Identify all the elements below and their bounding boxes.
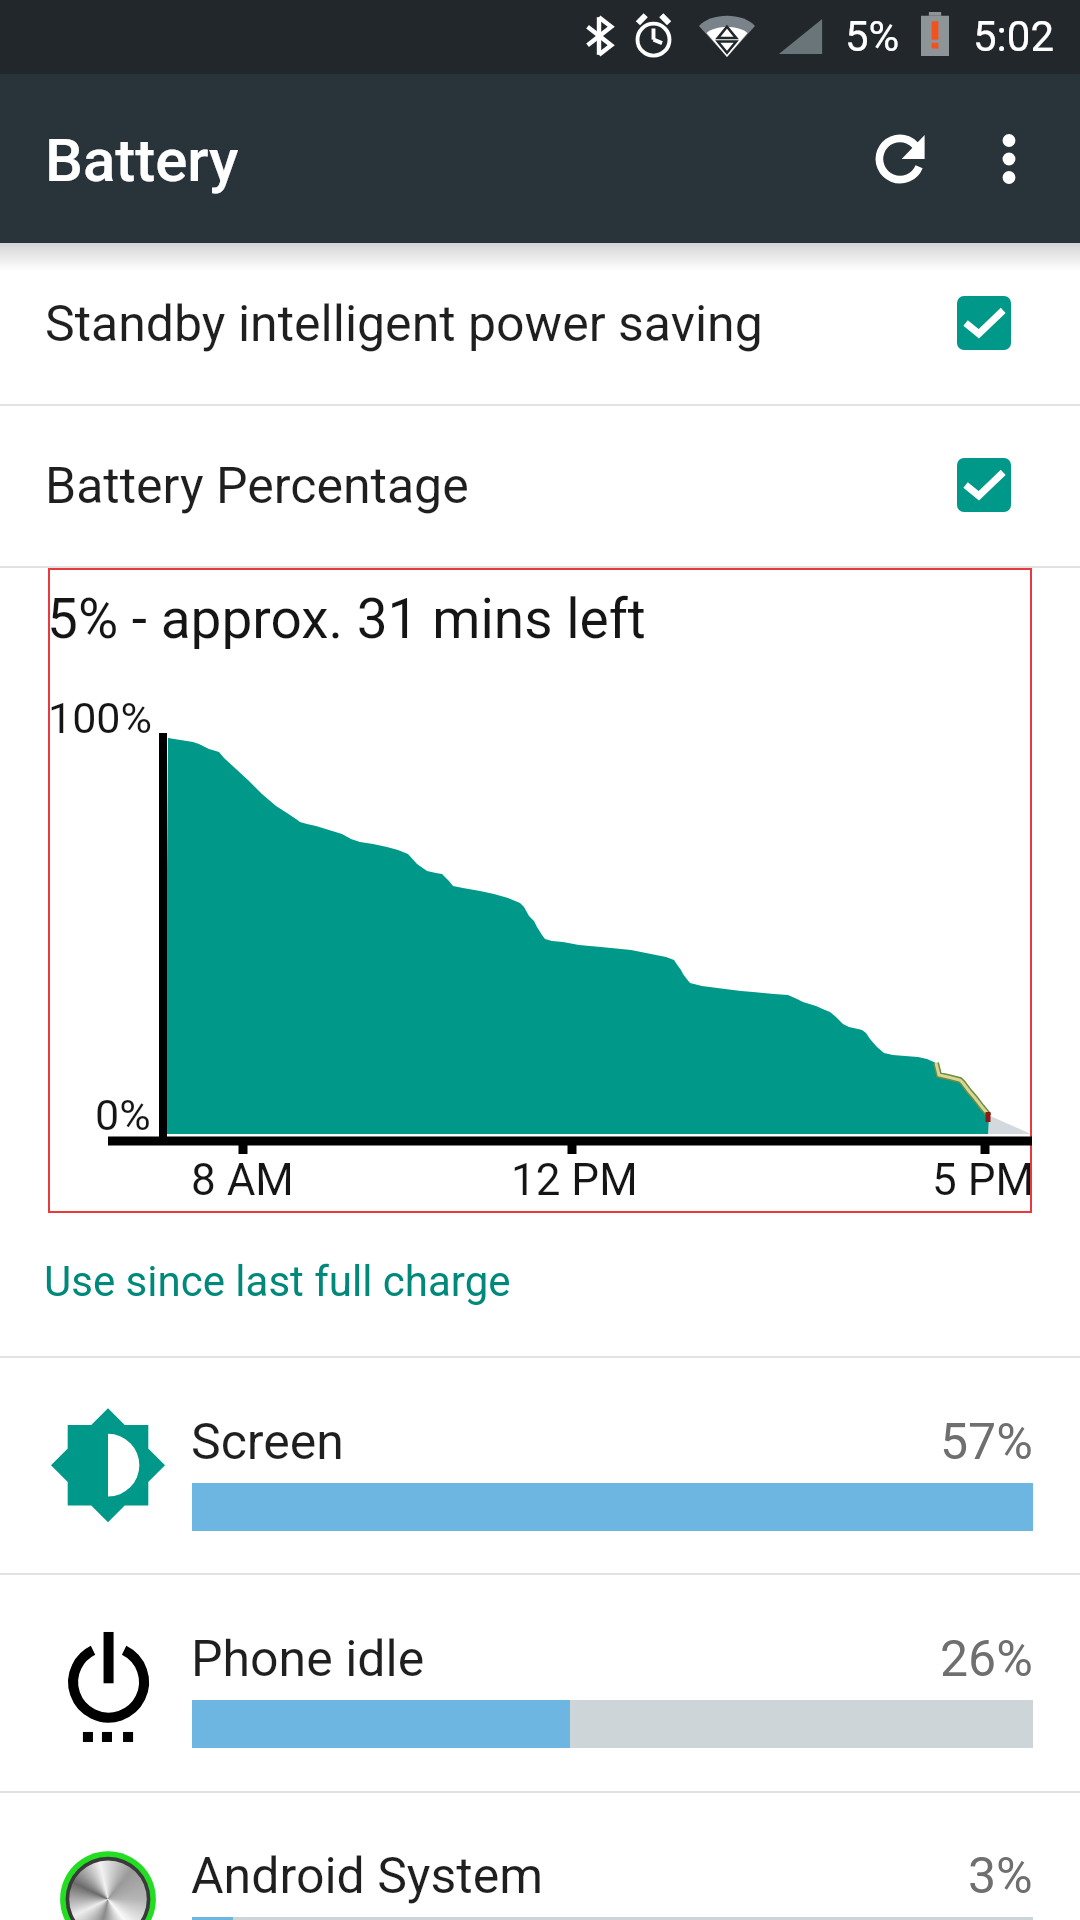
staticText: 8 AM [191, 1154, 294, 1206]
staticText: Battery [45, 125, 239, 195]
staticText: 5% [845, 12, 900, 61]
staticText: 26% [940, 1630, 1033, 1689]
staticText: Battery Percentage [45, 457, 469, 516]
staticText: 3% [968, 1847, 1033, 1906]
button[interactable]: More options [938, 74, 1080, 243]
staticText: 57% [940, 1413, 1033, 1472]
staticText: 5% - approx. 31 mins left [47, 587, 646, 651]
button[interactable]: Battery history graph [48, 568, 1032, 1213]
button[interactable]: Standby intelligent power saving [0, 243, 1080, 405]
button[interactable]: Screen [0, 1358, 1080, 1575]
staticText: 5 PM [932, 1154, 1034, 1206]
button[interactable]: Refresh [816, 75, 984, 243]
staticText: 12 PM [511, 1154, 638, 1206]
staticText: Use since last full charge [44, 1257, 511, 1306]
staticText: Android System [191, 1847, 544, 1906]
staticText: Screen [191, 1413, 344, 1472]
staticText: Standby intelligent power saving [45, 295, 763, 354]
button[interactable]: Use since last full charge [0, 1213, 1080, 1357]
staticText: 100% [48, 693, 152, 743]
button[interactable]: Battery Percentage [0, 405, 1080, 567]
button[interactable]: Android System [0, 1792, 1080, 1920]
staticText: Phone idle [191, 1630, 425, 1689]
staticText: 5:02 [973, 12, 1054, 61]
staticText: 0% [95, 1090, 151, 1140]
button[interactable]: Phone idle [0, 1575, 1080, 1792]
